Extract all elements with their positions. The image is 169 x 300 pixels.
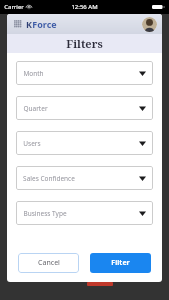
button[interactable]: Cancel bbox=[18, 253, 79, 273]
button[interactable]: Sales Confidence bbox=[16, 166, 153, 190]
button[interactable]: Month bbox=[16, 61, 153, 85]
staticText: Force bbox=[32, 18, 57, 30]
staticText: Business Type bbox=[23, 209, 67, 218]
staticText: Filter bbox=[111, 258, 130, 268]
staticText: Filters bbox=[66, 36, 103, 51]
staticText: Cancel bbox=[38, 258, 60, 268]
button[interactable]: Users bbox=[16, 131, 153, 155]
button[interactable]: Business Type bbox=[16, 201, 153, 225]
staticText: K bbox=[26, 18, 32, 30]
staticText: Sales Confidence bbox=[23, 174, 75, 183]
button[interactable]: Filter bbox=[90, 253, 151, 273]
button[interactable]: Profile bbox=[142, 17, 157, 32]
staticText: Month bbox=[23, 69, 44, 78]
button[interactable]: Apps menu bbox=[13, 19, 23, 29]
staticText: 12:56 AM bbox=[71, 3, 98, 11]
staticText: Carrier bbox=[4, 3, 24, 11]
staticText: Quarter bbox=[23, 104, 48, 113]
button[interactable]: Quarter bbox=[16, 96, 153, 120]
staticText: Users bbox=[23, 139, 41, 148]
